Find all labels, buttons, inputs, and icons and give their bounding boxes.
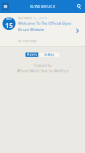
button[interactable]: Menu — [0, 0, 11, 13]
button[interactable]: NOV — [0, 0, 85, 46]
staticText: Mobile — [26, 53, 37, 56]
button[interactable]: Search — [73, 0, 84, 13]
staticText: NOVEMBER 15, 2014 — [18, 16, 47, 20]
staticText: Welcome To The Official Elyse Bruce Webs… — [18, 20, 71, 32]
button[interactable]: Mobile — [25, 52, 38, 57]
staticText: WPtouch Mobile Suite for WordPress — [17, 69, 68, 73]
staticText: NO RESPONSES — [18, 39, 36, 43]
staticText: NOV — [6, 17, 12, 21]
staticText: Desktop — [43, 53, 54, 56]
staticText: Powered by — [34, 64, 51, 67]
staticText: 15 — [5, 21, 13, 30]
staticText: ELYSE BRUCE — [30, 4, 55, 9]
button[interactable]: Desktop — [38, 52, 59, 57]
